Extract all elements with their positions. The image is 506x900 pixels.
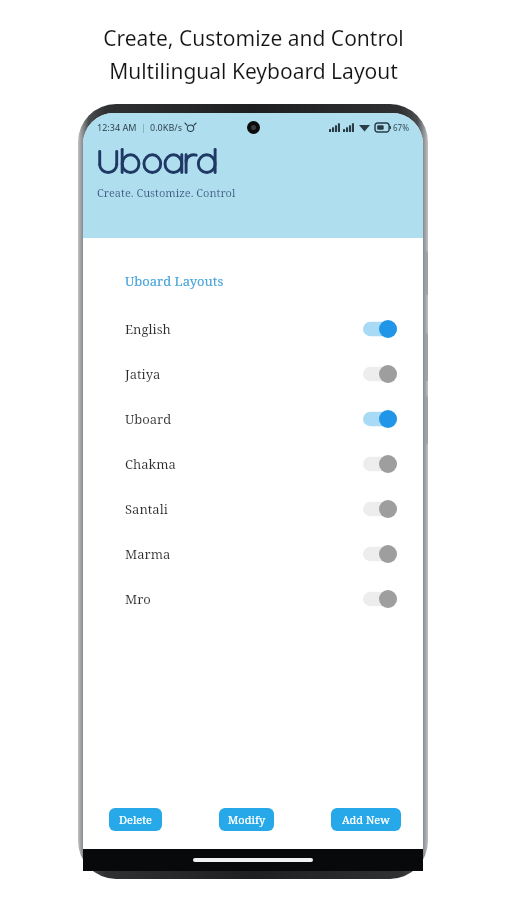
staticText: Multilingual Keyboard Layout xyxy=(109,57,398,86)
staticText: 12:34 AM xyxy=(97,121,137,133)
staticText: Add New xyxy=(342,812,390,827)
button[interactable]: English xyxy=(83,306,423,351)
staticText: Mro xyxy=(125,590,151,608)
button[interactable]: Disabled xyxy=(363,545,397,563)
button[interactable]: Mro xyxy=(83,576,423,621)
staticText: 67% xyxy=(393,122,409,133)
button[interactable]: Santali xyxy=(83,486,423,531)
staticText: Santali xyxy=(125,500,168,518)
staticText: Modify xyxy=(228,812,266,827)
button[interactable]: Enabled xyxy=(363,410,397,428)
button[interactable]: Add New xyxy=(331,808,401,831)
button[interactable]: Disabled xyxy=(363,365,397,383)
staticText: Create. Customize. Control xyxy=(97,185,236,200)
button[interactable]: Disabled xyxy=(363,590,397,608)
staticText: Create, Customize and Control xyxy=(103,24,404,53)
staticText: | xyxy=(141,121,146,133)
button[interactable]: Chakma xyxy=(83,441,423,486)
button[interactable]: Delete xyxy=(109,808,162,831)
staticText: Chakma xyxy=(125,455,176,473)
staticText: Delete xyxy=(119,812,152,827)
staticText: Jatiya xyxy=(125,365,161,383)
button[interactable]: Marma xyxy=(83,531,423,576)
button[interactable]: Jatiya xyxy=(83,351,423,396)
staticText: 0.0KB/s xyxy=(150,121,183,133)
staticText: English xyxy=(125,320,171,338)
staticText: Marma xyxy=(125,545,171,563)
staticText: Uboard Layouts xyxy=(125,272,224,290)
button[interactable]: Modify xyxy=(219,808,274,831)
staticText: Uboard xyxy=(125,410,172,428)
button[interactable]: Enabled xyxy=(363,320,397,338)
button[interactable]: Disabled xyxy=(363,500,397,518)
button[interactable]: Disabled xyxy=(363,455,397,473)
button[interactable]: Uboard xyxy=(83,396,423,441)
